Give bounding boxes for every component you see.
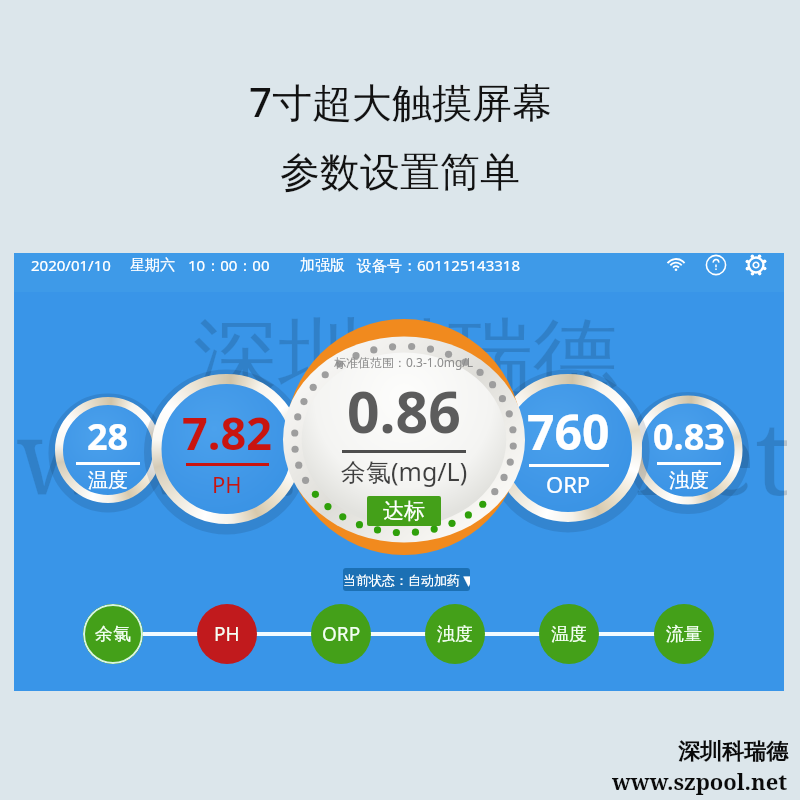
staticText: ORP	[546, 469, 591, 499]
staticText: 余氯	[95, 623, 131, 646]
staticText: 28	[87, 412, 129, 461]
button[interactable]: WiFi	[664, 253, 688, 277]
staticText: 加强版	[300, 256, 345, 275]
staticText: 深圳科瑞德	[193, 305, 618, 412]
staticText: www.szpool.net	[17, 386, 787, 525]
staticText: PH	[212, 469, 242, 499]
staticText: 温度	[551, 623, 587, 646]
staticText: PH	[214, 621, 240, 647]
button[interactable]: 余氯	[83, 604, 143, 664]
staticText: 流量	[666, 623, 702, 646]
staticText: 760	[527, 399, 610, 464]
staticText: www.szpool.net	[612, 766, 788, 796]
staticText: 0.86	[347, 372, 461, 450]
button[interactable]: PH	[197, 604, 257, 664]
staticText: 0.83	[653, 412, 725, 461]
staticText: 浊度	[669, 468, 709, 493]
button[interactable]: 温度	[539, 604, 599, 664]
staticText: 参数设置简单	[280, 147, 520, 197]
button[interactable]: PH	[152, 374, 302, 524]
staticText: 星期六	[130, 256, 175, 275]
button[interactable]: 浊度	[634, 396, 743, 505]
staticText: 7.82	[182, 402, 272, 463]
button[interactable]: 达标	[367, 496, 441, 526]
button[interactable]: 流量	[654, 604, 714, 664]
staticText: 浊度	[437, 623, 473, 646]
button[interactable]: 浊度	[425, 604, 485, 664]
staticText: 标准值范围：0.3-1.0mg/L	[334, 354, 474, 370]
staticText: 温度	[88, 468, 128, 493]
staticText: 2020/01/10	[31, 255, 111, 275]
staticText: 7寸超大触摸屏幕	[249, 74, 552, 129]
staticText: 余氯(mg/L)	[341, 454, 468, 488]
button[interactable]: 温度	[55, 397, 161, 503]
staticText: 达标	[383, 498, 425, 524]
staticText: ORP	[322, 621, 361, 647]
button[interactable]: ORP	[311, 604, 371, 664]
button[interactable]: ORP	[494, 374, 642, 522]
button[interactable]: Settings	[744, 253, 768, 277]
staticText: 设备号：601125143318	[357, 255, 520, 275]
staticText: 深圳科瑞德	[678, 738, 788, 766]
button[interactable]: Help	[704, 253, 728, 277]
button[interactable]: 余氯	[286, 319, 522, 555]
staticText: 10：00：00	[188, 255, 270, 275]
staticText: 当前状态：自动加药 ▼	[343, 571, 470, 589]
button[interactable]: 当前状态：自动加药 ▼	[343, 568, 470, 591]
